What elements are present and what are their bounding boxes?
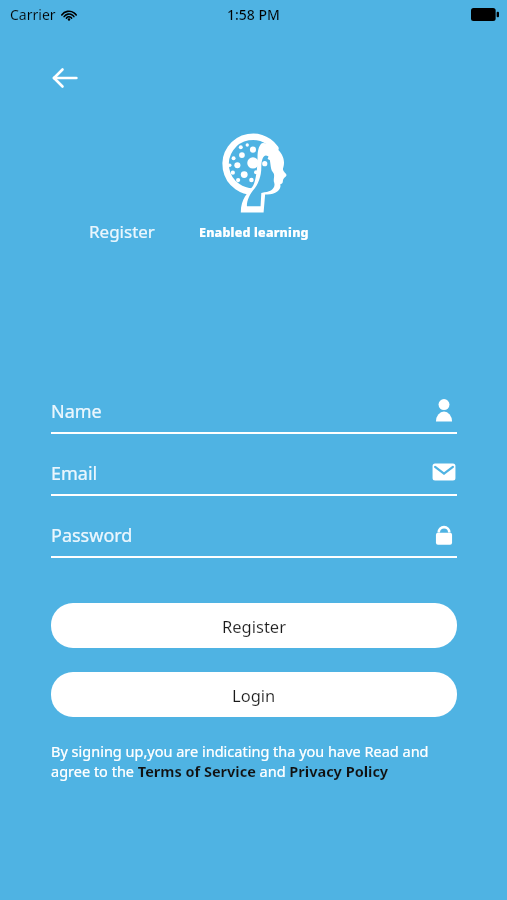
button[interactable]: Back (44, 58, 84, 98)
staticText: Password (51, 523, 133, 548)
staticText: Register (222, 615, 286, 637)
staticText: Name (51, 399, 102, 424)
button[interactable]: Name (51, 396, 457, 434)
staticText: By signing up,you are indicating tha you… (51, 741, 457, 781)
button[interactable]: Login (51, 672, 457, 717)
staticText: Carrier (10, 5, 56, 24)
button[interactable]: Email (51, 458, 457, 496)
staticText: Enabled learning (199, 224, 309, 241)
button[interactable]: Register (89, 220, 155, 243)
staticText: Email (51, 461, 98, 486)
staticText: Login (232, 684, 276, 706)
staticText: 1:58 PM (227, 5, 280, 24)
button[interactable]: Password (51, 520, 457, 558)
button[interactable]: Register (51, 603, 457, 648)
staticText: Register (89, 220, 155, 243)
button[interactable]: By signing up,you are indicating tha you… (51, 741, 457, 781)
